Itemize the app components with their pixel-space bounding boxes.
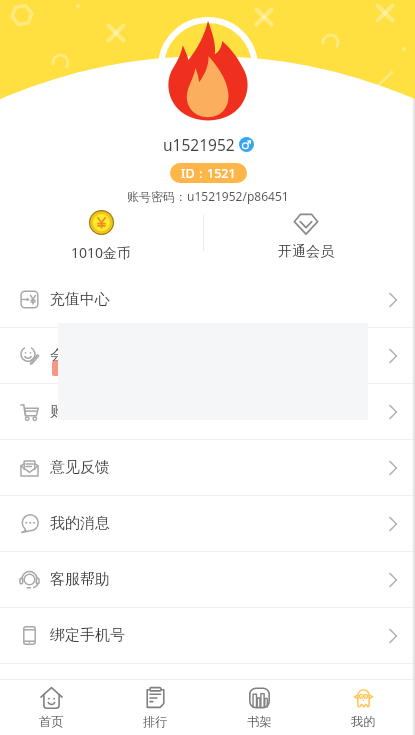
button[interactable]: 我的消息: [0, 496, 415, 552]
button[interactable]: 头像: [155, 16, 261, 122]
button[interactable]: 会员中心: [0, 328, 415, 384]
staticText: 首页: [39, 714, 64, 729]
staticText: 绑定手机号: [50, 626, 125, 645]
staticText: 1010金币: [71, 243, 132, 262]
button[interactable]: 书架: [207, 680, 311, 735]
staticText: 书架: [247, 714, 272, 729]
button[interactable]: 购买记录: [0, 384, 415, 440]
button[interactable]: 充值中心: [0, 272, 415, 328]
staticText: 购买记录: [50, 402, 110, 421]
staticText: 账号密码：u1521952/p86451: [127, 188, 289, 204]
button[interactable]: 1010金币: [0, 210, 203, 262]
staticText: 我的消息: [50, 514, 110, 533]
staticText: ID：1521: [181, 165, 236, 182]
button[interactable]: 绑定手机号: [0, 608, 415, 664]
staticText: 开通会员: [278, 243, 334, 261]
staticText: 我的: [351, 714, 376, 729]
staticText: 排行: [143, 714, 168, 729]
button[interactable]: 意见反馈: [0, 440, 415, 496]
staticText: u1521952: [163, 134, 235, 155]
button[interactable]: 首页: [0, 680, 103, 735]
button[interactable]: ID：1521: [170, 163, 247, 183]
staticText: 意见反馈: [50, 458, 110, 477]
staticText: 会员中心: [50, 346, 110, 365]
button[interactable]: 我的: [311, 680, 415, 735]
staticText: 客服帮助: [50, 570, 110, 589]
staticText: 充值中心: [50, 290, 110, 309]
button[interactable]: 开通会员: [204, 210, 408, 261]
button[interactable]: 客服帮助: [0, 552, 415, 608]
button[interactable]: 排行: [103, 680, 207, 735]
